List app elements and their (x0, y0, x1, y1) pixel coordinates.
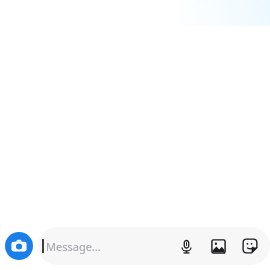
button[interactable]: Open camera (5, 232, 33, 260)
staticText: Message... (46, 239, 101, 254)
button[interactable]: Send photo (205, 233, 231, 259)
button[interactable]: Send sticker (237, 233, 263, 259)
button[interactable]: Message... (46, 231, 166, 261)
button[interactable]: Record voice message (173, 233, 199, 259)
